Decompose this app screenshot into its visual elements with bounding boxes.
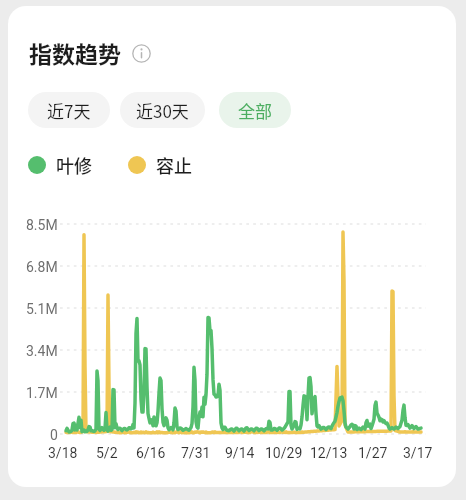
button[interactable]: 叶修 bbox=[28, 152, 92, 178]
staticText: 12/13 bbox=[310, 445, 348, 461]
button[interactable]: 容止 bbox=[128, 152, 192, 178]
staticText: 1/27 bbox=[358, 445, 388, 461]
staticText: 容止 bbox=[156, 152, 192, 178]
staticText: 7/31 bbox=[181, 445, 211, 461]
staticText: 5.1M bbox=[26, 301, 58, 317]
staticText: 5/2 bbox=[96, 445, 118, 461]
button[interactable]: 全部 bbox=[219, 92, 291, 128]
button[interactable]: More information bbox=[130, 42, 152, 64]
staticText: 9/14 bbox=[225, 445, 255, 461]
staticText: 近30天 bbox=[136, 98, 189, 123]
staticText: 10/29 bbox=[265, 445, 303, 461]
button[interactable]: 近7天 bbox=[28, 92, 110, 128]
staticText: 3.4M bbox=[26, 343, 58, 359]
staticText: 0 bbox=[50, 427, 58, 443]
staticText: 指数趋势 bbox=[29, 36, 121, 69]
staticText: 叶修 bbox=[56, 152, 92, 178]
staticText: 6/16 bbox=[136, 445, 166, 461]
staticText: 3/17 bbox=[403, 445, 433, 461]
staticText: 3/18 bbox=[48, 445, 78, 461]
staticText: 近7天 bbox=[47, 98, 91, 123]
staticText: 全部 bbox=[238, 98, 272, 123]
button[interactable]: 近30天 bbox=[120, 92, 205, 128]
staticText: 6.8M bbox=[26, 259, 58, 275]
staticText: 8.5M bbox=[26, 217, 58, 233]
staticText: 1.7M bbox=[26, 385, 58, 401]
